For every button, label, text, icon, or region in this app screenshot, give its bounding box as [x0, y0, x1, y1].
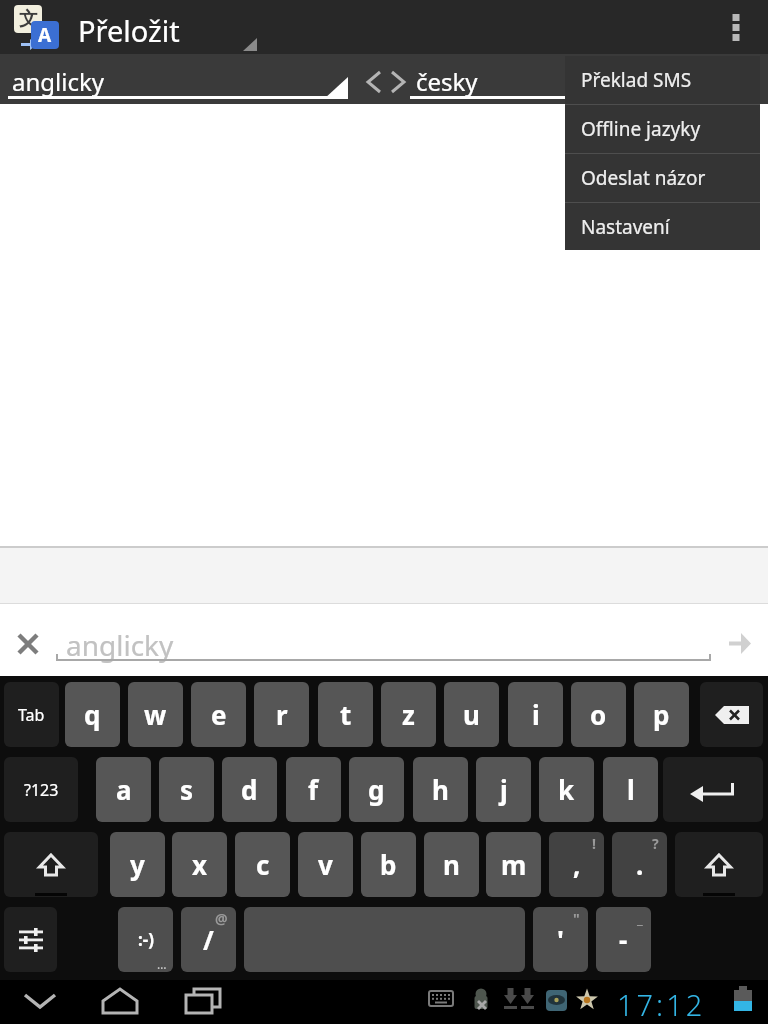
- staticText: y: [130, 847, 145, 882]
- button[interactable]: s: [159, 757, 214, 822]
- button[interactable]: y: [110, 832, 165, 897]
- button[interactable]: l: [603, 757, 658, 822]
- staticText: k: [558, 772, 575, 807]
- button[interactable]: c: [235, 832, 290, 897]
- button[interactable]: Překlad SMS: [565, 56, 760, 104]
- staticText: Přeložit: [78, 11, 180, 50]
- staticText: česky: [416, 65, 478, 98]
- staticText: Odeslat názor: [581, 165, 706, 191]
- staticText: d: [241, 772, 258, 807]
- button[interactable]: [700, 682, 763, 747]
- button[interactable]: Přeložit: [0, 0, 270, 54]
- button[interactable]: o: [571, 682, 626, 747]
- button[interactable]: a: [96, 757, 151, 822]
- button[interactable]: [716, 620, 764, 666]
- staticText: ': [557, 922, 564, 957]
- button[interactable]: ?123: [4, 757, 78, 822]
- button[interactable]: p: [634, 682, 689, 747]
- button[interactable]: anglicky: [0, 54, 352, 104]
- button[interactable]: [172, 980, 232, 1024]
- button[interactable]: Odeslat názor: [565, 154, 760, 202]
- button[interactable]: :-): [118, 907, 173, 972]
- button[interactable]: j: [476, 757, 531, 822]
- button[interactable]: b: [361, 832, 416, 897]
- staticText: x: [192, 847, 208, 882]
- staticText: r: [276, 697, 288, 732]
- staticText: ?123: [24, 779, 59, 801]
- staticText: @: [215, 909, 228, 928]
- button[interactable]: ,: [549, 832, 604, 897]
- staticText: …: [157, 956, 167, 972]
- button[interactable]: v: [298, 832, 353, 897]
- staticText: v: [318, 847, 333, 882]
- button[interactable]: anglicky: [56, 600, 712, 666]
- staticText: A: [38, 22, 52, 48]
- button[interactable]: [90, 980, 150, 1024]
- staticText: ,: [573, 847, 581, 882]
- staticText: z: [402, 697, 415, 732]
- staticText: !: [592, 834, 596, 853]
- button[interactable]: [675, 832, 763, 897]
- button[interactable]: /: [181, 907, 236, 972]
- staticText: h: [432, 772, 449, 807]
- button[interactable]: h: [413, 757, 468, 822]
- staticText: anglicky: [12, 65, 105, 98]
- staticText: Tab: [18, 704, 45, 726]
- staticText: e: [211, 697, 227, 732]
- staticText: p: [653, 697, 670, 732]
- button[interactable]: q: [65, 682, 120, 747]
- staticText: :-): [138, 928, 154, 951]
- staticText: b: [380, 847, 397, 882]
- staticText: s: [180, 772, 194, 807]
- button[interactable]: [4, 907, 57, 972]
- staticText: m: [501, 847, 527, 882]
- button[interactable]: -: [596, 907, 651, 972]
- button[interactable]: Tab: [4, 682, 59, 747]
- button[interactable]: d: [222, 757, 277, 822]
- button[interactable]: z: [381, 682, 436, 747]
- button[interactable]: x: [172, 832, 227, 897]
- staticText: t: [340, 697, 352, 732]
- button[interactable]: f: [286, 757, 341, 822]
- button[interactable]: k: [539, 757, 594, 822]
- button[interactable]: n: [424, 832, 479, 897]
- button[interactable]: [4, 614, 52, 662]
- button[interactable]: t: [318, 682, 373, 747]
- staticText: u: [463, 697, 480, 732]
- staticText: _: [637, 909, 643, 928]
- staticText: w: [144, 697, 167, 732]
- staticText: a: [116, 772, 132, 807]
- button[interactable]: e: [191, 682, 246, 747]
- staticText: c: [256, 847, 270, 882]
- button[interactable]: .: [612, 832, 667, 897]
- staticText: j: [500, 772, 508, 807]
- staticText: i: [532, 697, 540, 732]
- button[interactable]: [356, 54, 410, 104]
- staticText: ": [573, 909, 580, 928]
- button[interactable]: u: [444, 682, 499, 747]
- button[interactable]: Nastavení: [565, 203, 760, 250]
- staticText: -: [619, 922, 628, 957]
- button[interactable]: i: [508, 682, 563, 747]
- button[interactable]: Offline jazyky: [565, 105, 760, 153]
- staticText: Offline jazyky: [581, 116, 701, 142]
- button[interactable]: w: [128, 682, 183, 747]
- button[interactable]: [714, 0, 758, 54]
- staticText: /: [203, 922, 214, 957]
- staticText: ?: [652, 834, 659, 853]
- button[interactable]: [663, 757, 763, 822]
- button[interactable]: česky: [410, 54, 768, 104]
- button[interactable]: ': [533, 907, 588, 972]
- staticText: n: [443, 847, 460, 882]
- button[interactable]: [4, 832, 98, 897]
- staticText: g: [368, 772, 385, 807]
- button[interactable]: [10, 980, 70, 1024]
- button[interactable]: g: [349, 757, 404, 822]
- staticText: q: [84, 697, 101, 732]
- button[interactable]: m: [486, 832, 541, 897]
- button[interactable]: r: [254, 682, 309, 747]
- staticText: .: [636, 847, 644, 882]
- staticText: Nastavení: [581, 214, 670, 240]
- staticText: Překlad SMS: [581, 67, 692, 93]
